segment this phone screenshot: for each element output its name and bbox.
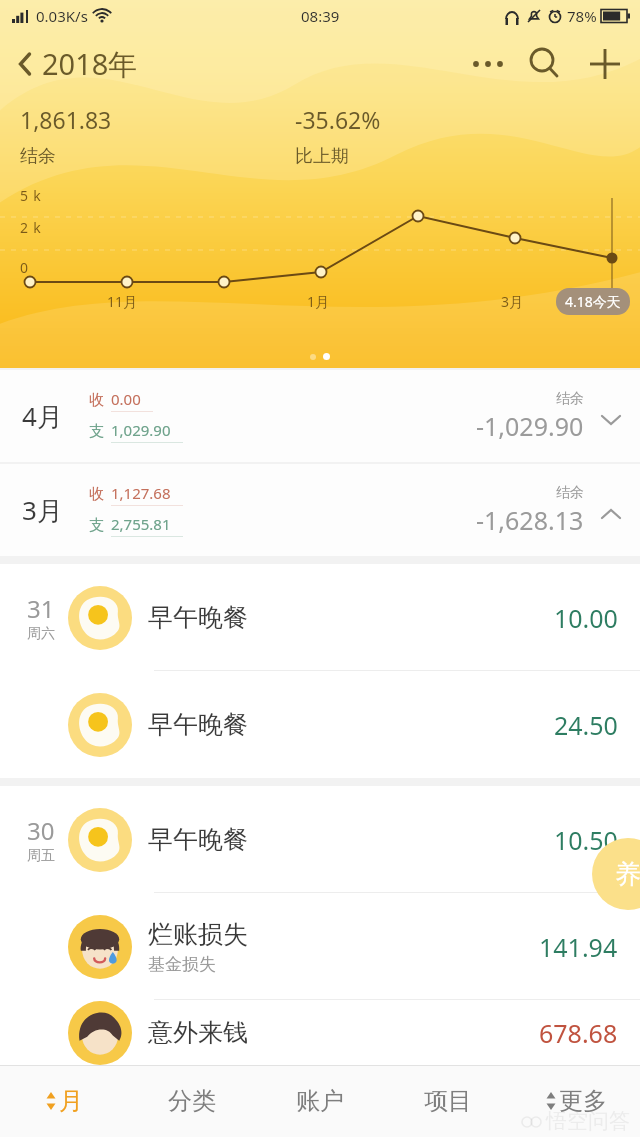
staticText: 收 — [89, 391, 104, 410]
staticText: 早午晚餐 — [148, 602, 248, 633]
staticText: -1,029.90 — [476, 409, 584, 443]
button[interactable]: 账户 — [256, 1065, 384, 1137]
staticText: 支 — [89, 516, 104, 535]
staticText: 2,755.81 — [111, 514, 171, 534]
staticText: 1,127.68 — [111, 483, 171, 503]
button[interactable]: Add — [574, 33, 636, 95]
button[interactable]: 月 — [0, 1065, 128, 1137]
staticText: 10.50 — [554, 823, 618, 857]
staticText: -1,628.13 — [476, 503, 584, 537]
staticText: 更多 — [559, 1086, 607, 1116]
button[interactable]: 31 — [0, 564, 640, 671]
staticText: 分类 — [168, 1086, 216, 1116]
staticText: 0 — [20, 258, 29, 277]
button[interactable]: 2018年 — [0, 36, 146, 92]
button[interactable]: 项目 — [384, 1065, 512, 1137]
button[interactable]: 意外来钱 — [0, 1000, 640, 1065]
staticText: 养 — [615, 858, 640, 891]
staticText: 结余 — [556, 390, 584, 408]
staticText: 结余 — [20, 145, 56, 168]
staticText: 1,029.90 — [111, 420, 171, 440]
staticText: 早午晚餐 — [148, 824, 248, 855]
staticText: 烂账损失 — [148, 919, 248, 950]
button[interactable]: 更多 — [512, 1065, 640, 1137]
staticText: 11月 — [107, 292, 138, 311]
staticText: 早午晚餐 — [148, 709, 248, 740]
staticText: 3月 — [501, 292, 524, 311]
staticText: 项目 — [424, 1086, 472, 1116]
staticText: 08:39 — [301, 6, 340, 26]
staticText: 0.03K/s — [36, 6, 88, 26]
staticText: 24.50 — [554, 708, 618, 742]
staticText: 结余 — [556, 484, 584, 502]
staticText: 3月 — [22, 492, 63, 528]
staticText: 2 k — [20, 218, 42, 237]
staticText: -35.62% — [295, 104, 381, 135]
button[interactable]: 烂账损失 — [0, 893, 640, 1000]
staticText: 141.94 — [539, 930, 618, 964]
staticText: 周六 — [27, 625, 55, 643]
button[interactable]: 30 — [0, 786, 640, 893]
staticText: 0.00 — [111, 389, 141, 409]
staticText: 10.00 — [554, 601, 618, 635]
staticText: 比上期 — [295, 145, 349, 168]
button[interactable]: Quick add — [592, 838, 640, 910]
button[interactable]: 早午晚餐 — [0, 671, 640, 778]
staticText: 意外来钱 — [148, 1017, 248, 1048]
staticText: 31 — [27, 592, 55, 625]
button[interactable]: 3月 — [0, 464, 640, 556]
staticText: 1月 — [307, 292, 330, 311]
button[interactable]: 分类 — [128, 1065, 256, 1137]
staticText: 678.68 — [539, 1016, 618, 1050]
staticText: 1,861.83 — [20, 104, 112, 135]
button[interactable]: 4月 — [0, 370, 640, 462]
staticText: 账户 — [296, 1086, 344, 1116]
staticText: 4月 — [22, 398, 63, 434]
staticText: 30 — [27, 814, 55, 847]
staticText: 4.18今天 — [565, 292, 621, 311]
staticText: 收 — [89, 485, 104, 504]
staticText: 78% — [567, 6, 597, 26]
staticText: 周五 — [27, 847, 55, 865]
button[interactable]: Search — [516, 35, 574, 93]
staticText: 支 — [89, 422, 104, 441]
staticText: 月 — [59, 1086, 83, 1116]
staticText: 5 k — [20, 186, 42, 205]
staticText: 2018年 — [42, 44, 138, 84]
staticText: 基金损失 — [148, 954, 216, 975]
staticText: 悟空问答 — [546, 1108, 630, 1134]
button[interactable]: More options — [458, 35, 516, 93]
